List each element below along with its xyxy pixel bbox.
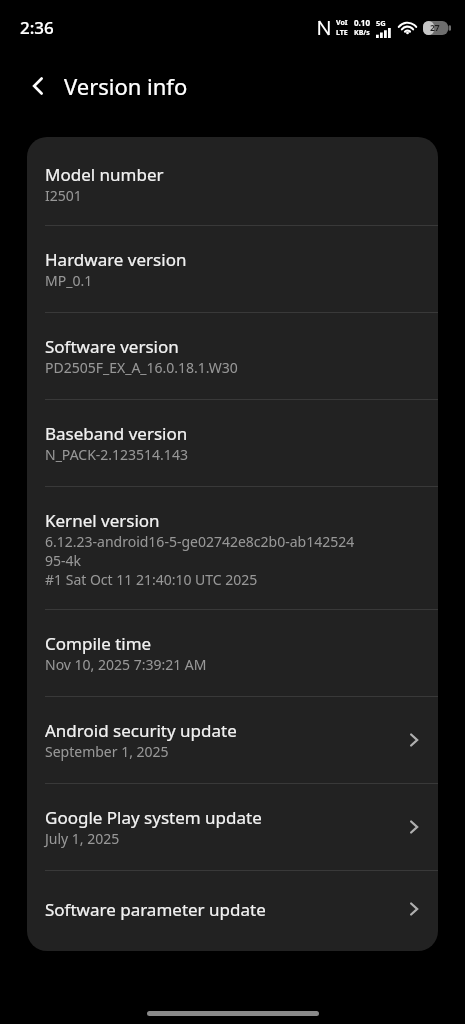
staticText: 95-4k (45, 551, 82, 570)
staticText: LTE (336, 28, 348, 38)
staticText: Android security update (45, 719, 237, 742)
staticText: #1 Sat Oct 11 21:40:10 UTC 2025 (45, 570, 258, 589)
staticText: Nov 10, 2025 7:39:21 AM (45, 655, 207, 674)
button[interactable]: Model number (27, 137, 438, 225)
staticText: I2501 (45, 186, 82, 205)
button[interactable]: Baseband version (27, 400, 438, 486)
button[interactable]: Google Play system update (27, 784, 438, 870)
staticText: September 1, 2025 (45, 742, 169, 761)
button[interactable]: Android security update (27, 697, 438, 783)
button[interactable]: Software version (27, 313, 438, 399)
staticText: Software parameter update (45, 898, 266, 921)
staticText: MP_0.1 (45, 271, 93, 290)
staticText: VoI (336, 18, 348, 28)
staticText: 0.10 (354, 17, 370, 28)
staticText: Compile time (45, 632, 152, 655)
button[interactable]: Software parameter update (27, 871, 438, 951)
staticText: Software version (45, 335, 179, 358)
staticText: July 1, 2025 (45, 829, 120, 848)
staticText: N_PACK-2.123514.143 (45, 445, 188, 464)
staticText: 27 (430, 22, 440, 34)
staticText: KB/s (354, 28, 370, 38)
staticText: PD2505F_EX_A_16.0.18.1.W30 (45, 358, 238, 377)
staticText: Google Play system update (45, 806, 262, 829)
staticText: Version info (64, 71, 188, 101)
button[interactable]: Back (16, 64, 60, 108)
staticText: Model number (45, 163, 164, 186)
staticText: Baseband version (45, 422, 188, 445)
button[interactable]: Kernel version (27, 487, 438, 609)
staticText: 2:36 (20, 16, 54, 39)
staticText: 6.12.23-android16-5-ge02742e8c2b0-ab1425… (45, 532, 355, 551)
button[interactable]: Hardware version (27, 226, 438, 312)
staticText: Hardware version (45, 248, 187, 271)
staticText: Kernel version (45, 509, 160, 532)
button[interactable]: Compile time (27, 610, 438, 696)
staticText: 5G (376, 18, 386, 28)
